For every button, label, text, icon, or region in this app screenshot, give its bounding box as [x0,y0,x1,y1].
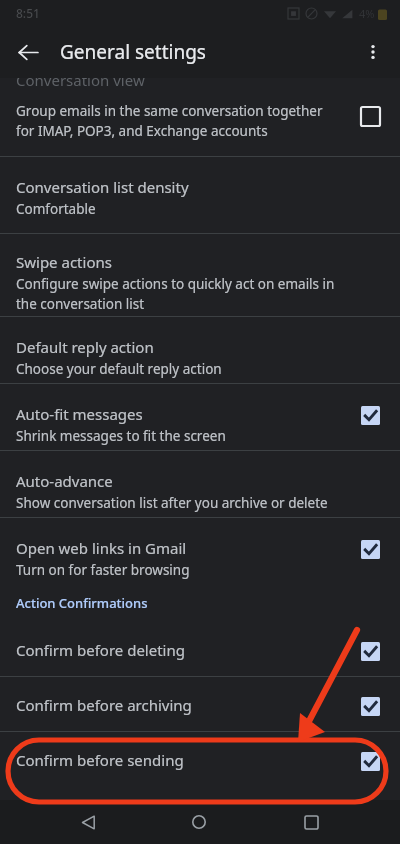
staticText: Configure swipe actions to quickly act o… [16,275,356,313]
staticText: Shrink messages to fit the screen [16,427,226,445]
button[interactable]: Unchecked [350,96,390,136]
button[interactable]: Swipe actions [0,234,400,316]
staticText: 8:51 [16,5,40,21]
button[interactable]: Conversation view [0,78,400,156]
staticText: Show conversation list after you archive… [16,494,328,512]
button[interactable]: Open web links in Gmail [0,518,400,580]
staticText: Auto-fit messages [16,404,143,424]
button[interactable]: Back [65,800,111,844]
staticText: Choose your default reply action [16,360,222,378]
button[interactable]: Default reply action [0,317,400,383]
button[interactable]: Checked [350,741,390,781]
staticText: Confirm before archiving [16,695,192,715]
staticText: Comfortable [16,200,96,218]
staticText: Action Confirmations [16,594,148,612]
button[interactable]: More options [352,31,394,73]
staticText: Confirm before deleting [16,640,185,660]
button[interactable]: Conversation list density [0,157,400,233]
staticText: Turn on for faster browsing [16,561,190,579]
staticText: Swipe actions [16,252,112,272]
staticText: Conversation list density [16,177,189,197]
button[interactable]: Recent apps [288,800,334,844]
button[interactable]: Auto-fit messages [0,384,400,450]
staticText: Default reply action [16,337,154,357]
staticText: General settings [60,39,206,65]
button[interactable]: Back [8,32,48,72]
staticText: Group emails in the same conversation to… [16,102,336,140]
button[interactable]: Checked [350,686,390,726]
button[interactable]: Checked [350,529,390,569]
button[interactable]: Checked [350,395,390,435]
button[interactable]: Auto-advance [0,451,400,517]
button[interactable]: Home [176,800,222,844]
staticText: 4% [359,6,375,21]
button[interactable]: Checked [350,631,390,671]
button[interactable]: Confirm before archiving [0,677,400,731]
staticText: Open web links in Gmail [16,538,187,558]
staticText: Confirm before sending [16,750,184,770]
button[interactable]: Confirm before deleting [0,622,400,676]
button[interactable]: Confirm before sending [0,732,400,786]
staticText: Conversation view [16,78,145,90]
staticText: Auto-advance [16,471,113,491]
